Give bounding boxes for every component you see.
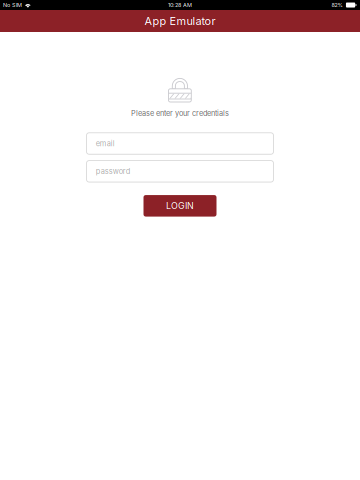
staticText: password (96, 167, 131, 176)
staticText: No SIM (3, 2, 22, 8)
staticText: 82% (331, 2, 342, 8)
staticText: 10:28 AM (168, 2, 192, 8)
staticText: App Emulator (144, 14, 215, 28)
staticText: email (96, 139, 115, 148)
button[interactable]: LOGIN (143, 195, 216, 217)
staticText: Please enter your credentials (131, 109, 229, 118)
staticText: LOGIN (166, 200, 194, 211)
button[interactable]: email (86, 133, 273, 154)
button[interactable]: password (86, 161, 273, 182)
